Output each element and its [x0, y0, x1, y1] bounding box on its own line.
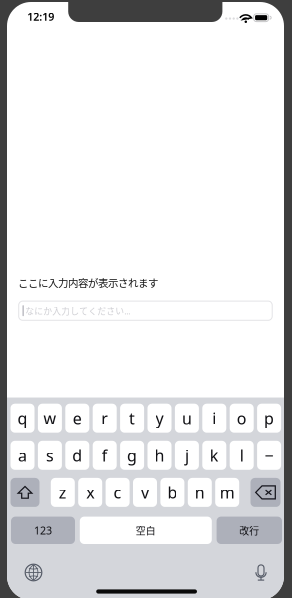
button[interactable]: w [38, 404, 62, 433]
button[interactable]: Next keyboard [22, 557, 45, 588]
button[interactable]: p [257, 404, 281, 433]
staticText: b [167, 482, 177, 503]
button[interactable]: f [93, 441, 117, 470]
staticText: m [220, 482, 235, 503]
staticText: g [127, 445, 137, 466]
button[interactable]: v [133, 478, 157, 507]
button[interactable]: g [120, 441, 144, 470]
button[interactable]: Dictation [248, 558, 274, 588]
button[interactable]: u [175, 404, 199, 433]
staticText: 改行 [239, 523, 259, 537]
staticText: y [155, 408, 163, 429]
staticText: h [154, 445, 164, 466]
staticText: c [114, 482, 122, 503]
staticText: j [185, 445, 189, 466]
button[interactable]: s [38, 441, 62, 470]
staticText: 12:19 [27, 10, 54, 24]
button[interactable]: m [215, 478, 239, 507]
button[interactable]: 123 [11, 517, 75, 544]
button[interactable]: d [65, 441, 89, 470]
button[interactable]: 空白 [80, 517, 212, 544]
staticText: d [72, 445, 82, 466]
staticText: 123 [34, 523, 52, 537]
staticText: f [102, 445, 108, 466]
staticText: i [212, 408, 216, 429]
staticText: w [43, 408, 56, 429]
staticText: a [18, 445, 27, 466]
staticText: 空白 [136, 523, 156, 537]
button[interactable]: Delete [250, 478, 280, 507]
staticText: t [129, 408, 135, 429]
button[interactable]: a [10, 441, 34, 470]
button[interactable]: n [188, 478, 212, 507]
button[interactable]: t [120, 404, 144, 433]
button[interactable]: i [202, 404, 226, 433]
staticText: o [237, 408, 247, 429]
button[interactable]: − [257, 441, 281, 470]
button[interactable]: q [10, 404, 34, 433]
button[interactable]: l [230, 441, 254, 470]
staticText: x [86, 482, 94, 503]
staticText: v [141, 482, 149, 503]
button[interactable]: o [230, 404, 254, 433]
button[interactable]: z [51, 478, 75, 507]
button[interactable]: x [78, 478, 102, 507]
button[interactable]: e [65, 404, 89, 433]
staticText: l [240, 445, 244, 466]
button[interactable]: 改行 [217, 517, 282, 544]
staticText: u [182, 408, 192, 429]
staticText: e [73, 408, 82, 429]
staticText: k [210, 445, 219, 466]
staticText: q [17, 408, 27, 429]
button[interactable]: y [147, 404, 171, 433]
staticText: なにか入力してください... [25, 304, 130, 317]
button[interactable]: r [93, 404, 117, 433]
staticText: − [265, 445, 274, 466]
staticText: ここに入力内容が表示されます [18, 275, 158, 290]
button[interactable]: b [160, 478, 184, 507]
button[interactable]: j [175, 441, 199, 470]
button[interactable]: c [106, 478, 130, 507]
staticText: z [59, 482, 67, 503]
button[interactable]: Shift [10, 478, 39, 507]
staticText: n [195, 482, 205, 503]
button[interactable]: k [202, 441, 226, 470]
button[interactable]: h [147, 441, 171, 470]
staticText: r [101, 408, 108, 429]
staticText: p [264, 408, 274, 429]
staticText: s [46, 445, 54, 466]
